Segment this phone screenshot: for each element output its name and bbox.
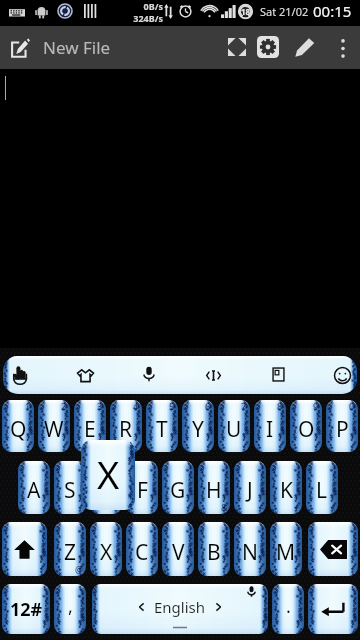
button[interactable]: Z xyxy=(54,522,86,576)
button[interactable]: P xyxy=(326,400,358,452)
staticText: New File xyxy=(43,36,111,59)
button[interactable]: Edit xyxy=(286,28,324,66)
staticText: 324B/s xyxy=(133,12,163,24)
staticText: Z xyxy=(64,538,77,567)
staticText: G xyxy=(170,476,186,505)
button[interactable]: R xyxy=(110,400,142,452)
button[interactable]: G xyxy=(162,461,194,514)
staticText: @ xyxy=(75,563,84,575)
button[interactable]: H xyxy=(198,461,230,514)
staticText: ( xyxy=(333,501,336,513)
staticText: 0 xyxy=(349,400,355,412)
staticText: 0B/s xyxy=(143,0,163,12)
button[interactable]: Fullscreen xyxy=(218,28,256,66)
staticText: 12# xyxy=(10,597,43,622)
staticText: N xyxy=(242,538,258,567)
button[interactable]: X xyxy=(90,522,122,576)
button[interactable]: Y xyxy=(182,400,214,452)
button[interactable]: U xyxy=(218,400,250,452)
button[interactable]: N xyxy=(234,522,266,576)
button[interactable]: English xyxy=(92,584,268,634)
staticText: I xyxy=(266,415,274,444)
staticText: J xyxy=(247,476,253,505)
button[interactable]: More options xyxy=(330,30,356,66)
staticText: X xyxy=(100,538,113,567)
button[interactable]: F xyxy=(126,461,158,514)
button[interactable]: 12# xyxy=(2,584,50,634)
button[interactable]: O xyxy=(290,400,322,452)
button[interactable]: L xyxy=(306,461,338,514)
staticText: 4 xyxy=(133,400,139,412)
staticText: V xyxy=(172,538,185,567)
staticText: English xyxy=(154,597,206,617)
button[interactable]: Settings xyxy=(249,28,287,66)
staticText: S xyxy=(64,476,76,505)
staticText: & xyxy=(221,501,228,513)
staticText: K xyxy=(280,476,293,505)
staticText: 5 xyxy=(169,400,175,412)
button[interactable]: D xyxy=(90,461,122,514)
staticText: A xyxy=(27,476,41,505)
staticText: 9 xyxy=(313,400,319,412)
staticText: Y xyxy=(192,415,204,444)
staticText: 2 xyxy=(61,400,67,412)
button[interactable]: T xyxy=(146,400,178,452)
staticText: Sat 21/02 xyxy=(260,4,309,19)
button[interactable]: K xyxy=(270,461,302,514)
staticText: P xyxy=(336,415,349,444)
button[interactable]: Backspace xyxy=(308,522,358,576)
staticText: D xyxy=(98,476,114,505)
staticText: 8 xyxy=(277,400,283,412)
staticText: 7 xyxy=(241,400,247,412)
button[interactable]: J xyxy=(234,461,266,514)
staticText: U xyxy=(226,415,242,444)
button[interactable]: W xyxy=(38,400,70,452)
button[interactable]: New File xyxy=(0,26,120,69)
button[interactable]: Shift xyxy=(2,522,47,576)
staticText: B xyxy=(207,538,221,567)
staticText: 3 xyxy=(97,400,103,412)
button[interactable]: A xyxy=(18,461,50,514)
staticText: 00:15 xyxy=(313,1,352,21)
staticText: R xyxy=(119,415,133,444)
staticText: - xyxy=(261,501,264,513)
staticText: Q xyxy=(10,415,27,444)
staticText: T xyxy=(156,415,168,444)
staticText: C xyxy=(135,538,149,567)
staticText: 1 xyxy=(25,400,31,412)
staticText: L xyxy=(316,476,328,505)
staticText: , xyxy=(68,594,73,619)
staticText: 6 xyxy=(205,400,211,412)
button[interactable]: Q xyxy=(2,400,34,452)
other: Shift xyxy=(13,538,36,561)
button[interactable]: S xyxy=(54,461,86,514)
button[interactable]: Enter xyxy=(308,584,358,634)
button[interactable]: , xyxy=(54,584,86,634)
other: Enter xyxy=(320,600,346,619)
button[interactable]: . xyxy=(272,584,304,634)
staticText: 18 xyxy=(241,6,251,17)
staticText: . xyxy=(286,594,291,619)
staticText: W xyxy=(44,415,64,444)
button[interactable]: M xyxy=(270,522,302,576)
button[interactable] xyxy=(3,356,357,394)
staticText: E xyxy=(84,415,96,444)
button[interactable]: I xyxy=(254,400,286,452)
button[interactable]: B xyxy=(198,522,230,576)
staticText: + xyxy=(294,501,300,513)
staticText: H xyxy=(206,476,222,505)
staticText: X xyxy=(97,448,120,500)
button[interactable]: E xyxy=(74,400,106,452)
staticText: F xyxy=(137,476,148,505)
staticText: M xyxy=(276,538,296,567)
button[interactable]: V xyxy=(162,522,194,576)
button[interactable]: C xyxy=(126,522,158,576)
other: Backspace xyxy=(320,540,347,559)
staticText: O xyxy=(298,415,315,444)
